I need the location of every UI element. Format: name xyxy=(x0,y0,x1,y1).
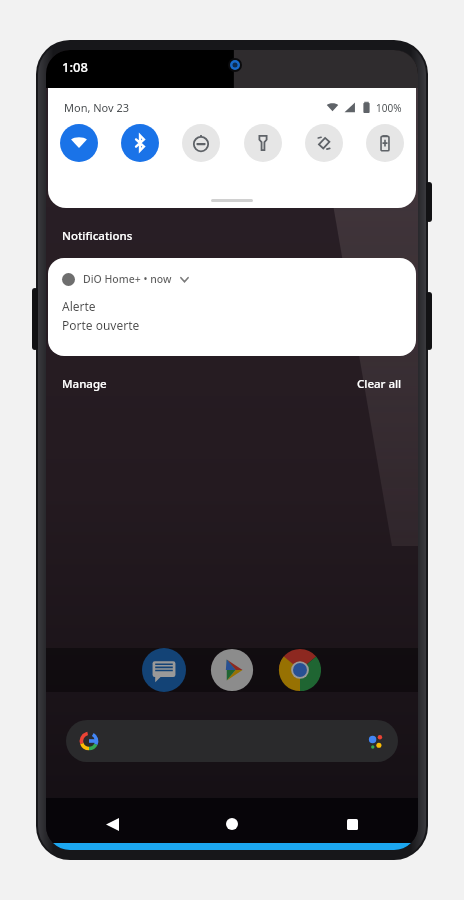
button[interactable]: Search xyxy=(66,720,398,762)
button[interactable]: Home xyxy=(218,810,246,838)
staticText: Notifications xyxy=(62,228,133,244)
button[interactable]: Auto rotate xyxy=(305,124,343,162)
button[interactable]: Back xyxy=(98,810,126,838)
staticText: Porte ouverte xyxy=(62,317,140,333)
button[interactable]: Battery saver xyxy=(366,124,404,162)
staticText: 100% xyxy=(376,101,402,115)
button[interactable]: Chrome xyxy=(278,648,322,692)
staticText: DiO Home+ • now xyxy=(83,272,172,286)
staticText: Mon, Nov 23 xyxy=(64,100,130,115)
button[interactable]: Recents xyxy=(338,810,366,838)
staticText: Manage xyxy=(62,376,107,392)
staticText: Alerte xyxy=(62,298,96,314)
button[interactable]: Wi-Fi xyxy=(60,124,98,162)
button[interactable]: Bluetooth xyxy=(121,124,159,162)
button[interactable]: Do not disturb xyxy=(182,124,220,162)
button[interactable]: DiO Home+ • now xyxy=(48,258,416,356)
staticText: 1:08 xyxy=(62,58,88,76)
button[interactable]: Manage xyxy=(62,376,107,392)
button[interactable]: Clear all xyxy=(357,376,402,392)
staticText: Clear all xyxy=(357,376,402,392)
button[interactable]: Play Store xyxy=(210,648,254,692)
button[interactable]: Messages xyxy=(142,648,186,692)
button[interactable]: Flashlight xyxy=(244,124,282,162)
